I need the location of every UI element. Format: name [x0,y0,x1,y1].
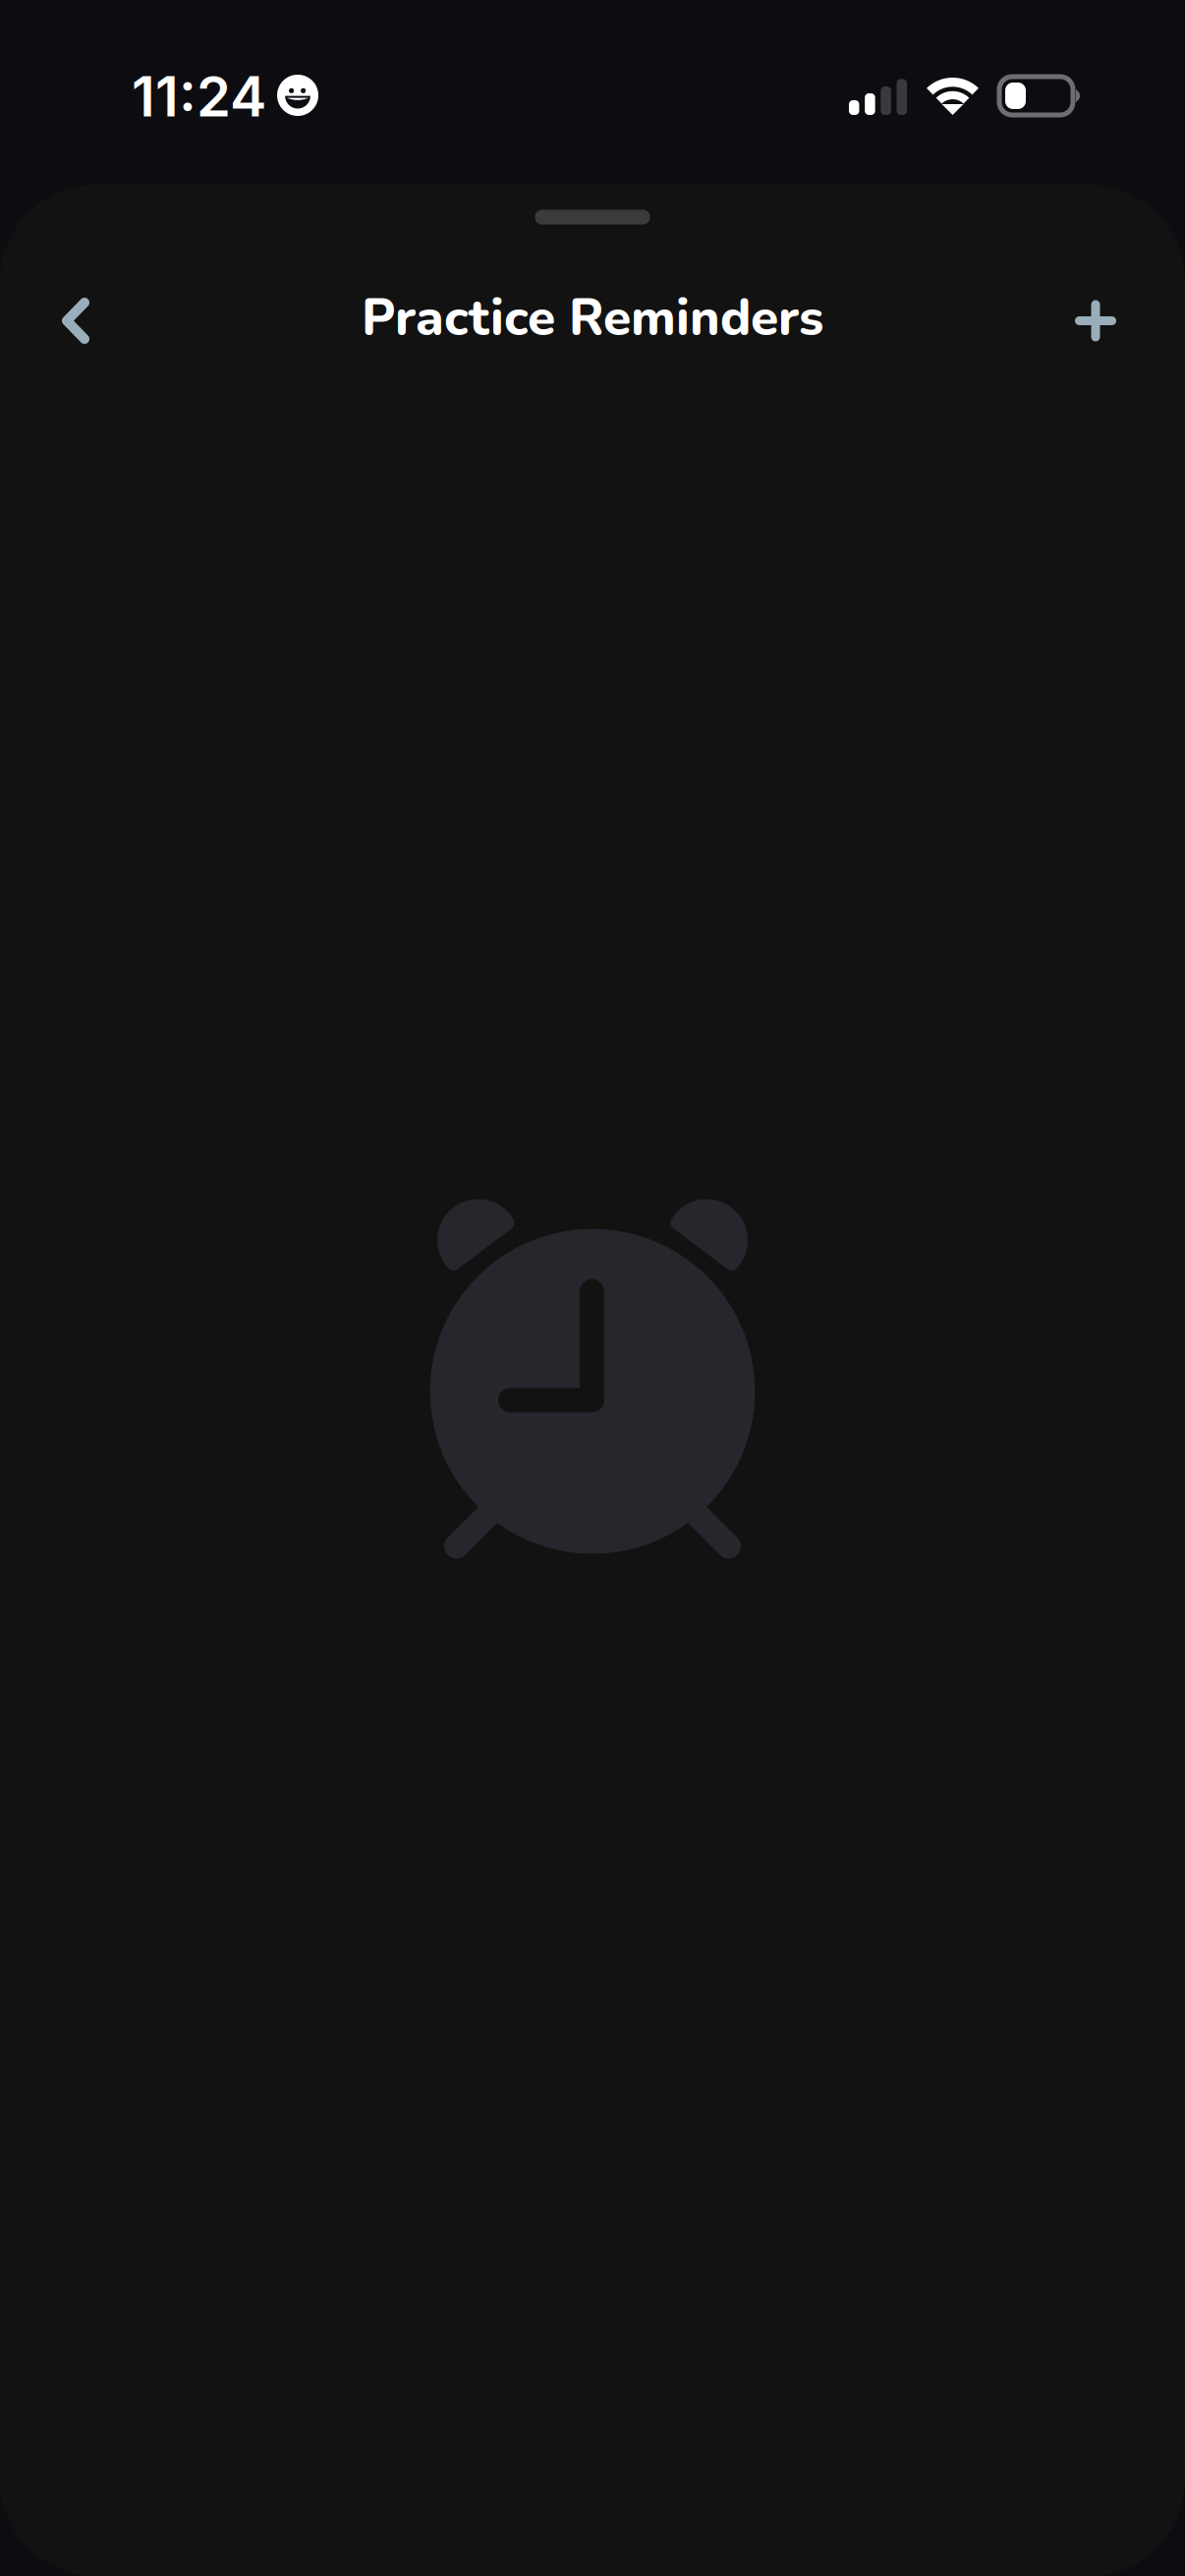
staticText: 11:24 [132,63,266,130]
staticText: Practice Reminders [362,283,823,352]
button[interactable]: Back [22,267,130,375]
button[interactable]: Add reminder [1042,267,1150,375]
